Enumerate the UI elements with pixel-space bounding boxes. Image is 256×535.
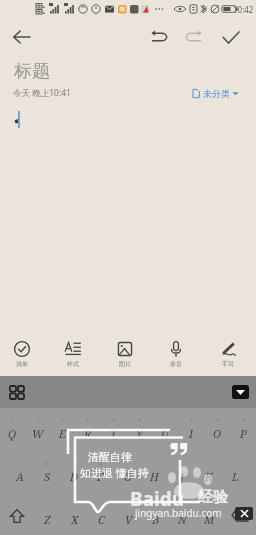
- staticText: 录音: [170, 360, 182, 368]
- staticText: T: [110, 426, 117, 441]
- button[interactable]: (: [168, 451, 195, 494]
- button[interactable]: Z: [33, 494, 61, 535]
- button[interactable]: Undo: [143, 22, 173, 52]
- button[interactable]: N: [169, 494, 196, 535]
- button[interactable]: 录音: [155, 340, 197, 376]
- staticText: Z: [44, 512, 51, 527]
- button[interactable]: V: [115, 494, 142, 535]
- button[interactable]: Close watermark: [235, 507, 253, 520]
- button[interactable]: 样式: [52, 340, 94, 376]
- staticText: F: [97, 469, 104, 484]
- staticText: G: [124, 469, 132, 484]
- staticText: 6: [138, 417, 141, 424]
- button[interactable]: B: [142, 494, 169, 535]
- staticText: O: [213, 426, 222, 441]
- staticText: 未分类: [203, 88, 230, 99]
- staticText: 7: [164, 417, 167, 424]
- staticText: 清醒自律: [88, 450, 132, 464]
- button[interactable]: X: [61, 494, 88, 535]
- button[interactable]: Redo: [179, 22, 209, 52]
- staticText: R: [84, 426, 92, 441]
- staticText: N: [178, 512, 187, 527]
- button[interactable]: 清单: [1, 340, 43, 376]
- staticText: C: [98, 512, 105, 527]
- staticText: ": [154, 460, 156, 467]
- staticText: 5: [112, 417, 115, 424]
- staticText: @: [44, 460, 49, 467]
- staticText: ': [73, 460, 75, 467]
- staticText: ): [208, 460, 210, 467]
- button[interactable]: ): [195, 451, 222, 494]
- staticText: 标题: [14, 60, 50, 83]
- button[interactable]: C: [88, 494, 115, 535]
- button[interactable]: Keyboard layouts: [5, 380, 29, 404]
- staticText: (: [181, 460, 183, 467]
- staticText: 3: [61, 417, 64, 424]
- button[interactable]: 2: [25, 408, 50, 451]
- button[interactable]: 9: [204, 408, 230, 451]
- button[interactable]: ': [60, 451, 87, 494]
- staticText: 样式: [67, 360, 79, 368]
- button[interactable]: Hide keyboard: [232, 385, 249, 399]
- staticText: 知进退 懂自持: [80, 465, 149, 480]
- staticText: 手写: [222, 360, 234, 368]
- button[interactable]: *: [114, 451, 141, 494]
- button[interactable]: /: [222, 451, 249, 494]
- button[interactable]: ": [141, 451, 168, 494]
- button[interactable]: 手写: [207, 340, 249, 376]
- button[interactable]: Shift: [0, 494, 33, 535]
- button[interactable]: 5: [100, 408, 126, 451]
- staticText: 经验: [198, 488, 228, 507]
- staticText: Y: [136, 426, 143, 441]
- button[interactable]: -: [7, 451, 33, 494]
- button[interactable]: @: [33, 451, 60, 494]
- button[interactable]: 4: [75, 408, 100, 451]
- staticText: S: [44, 469, 50, 484]
- staticText: I: [189, 426, 194, 441]
- button[interactable]: 图片: [104, 340, 146, 376]
- staticText: Q: [8, 426, 17, 441]
- button[interactable]: 6: [126, 408, 152, 451]
- button[interactable]: 未分类: [192, 88, 239, 99]
- staticText: 清单: [16, 360, 28, 368]
- button[interactable]: Backspace: [223, 494, 256, 535]
- staticText: °: [8, 504, 11, 512]
- button[interactable]: 1: [0, 408, 25, 451]
- button[interactable]: Save: [215, 21, 247, 53]
- staticText: 4: [86, 417, 89, 424]
- staticText: B: [152, 512, 160, 527]
- staticText: P: [240, 426, 247, 441]
- staticText: M: [204, 512, 215, 527]
- staticText: -: [19, 460, 21, 467]
- staticText: 1: [11, 417, 14, 424]
- staticText: &: [99, 460, 103, 467]
- button[interactable]: 8: [178, 408, 204, 451]
- staticText: 8: [190, 417, 193, 424]
- staticText: /: [235, 460, 237, 467]
- staticText: W: [32, 426, 44, 441]
- button[interactable]: &: [87, 451, 114, 494]
- staticText: X: [71, 512, 79, 527]
- staticText: jingyan.baidu.com: [135, 506, 222, 520]
- staticText: D: [70, 469, 78, 484]
- button[interactable]: Back: [4, 20, 38, 54]
- staticText: A: [16, 469, 24, 484]
- staticText: 9: [216, 417, 219, 424]
- staticText: 图片: [119, 360, 131, 368]
- staticText: J: [180, 469, 184, 484]
- staticText: Baidu: [130, 486, 185, 512]
- staticText: 今天 晚上10:41: [13, 87, 71, 99]
- staticText: 10:42: [233, 4, 254, 15]
- button[interactable]: 0: [230, 408, 256, 451]
- staticText: H: [150, 469, 159, 484]
- staticText: V: [125, 512, 133, 527]
- staticText: 2: [36, 417, 39, 424]
- staticText: K: [205, 469, 213, 484]
- staticText: L: [232, 469, 239, 484]
- staticText: U: [161, 426, 170, 441]
- staticText: *: [126, 460, 129, 467]
- button[interactable]: 3: [50, 408, 75, 451]
- button[interactable]: 7: [152, 408, 178, 451]
- staticText: 0: [242, 417, 245, 424]
- button[interactable]: M: [196, 494, 223, 535]
